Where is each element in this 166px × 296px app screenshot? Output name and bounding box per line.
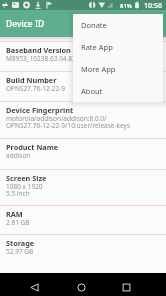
staticText: RAM (6, 209, 23, 219)
staticText: 5.5 inch (6, 189, 166, 198)
button[interactable]: Screen Size (0, 169, 166, 205)
button[interactable]: Product Name (0, 138, 166, 169)
staticText: OPNS27.76-12-22-9/10:user/release-keys (6, 121, 166, 130)
staticText: motorola/addison/addison:8.0.0/ (6, 114, 166, 123)
staticText: Donate (81, 20, 107, 30)
staticText: OPNS27.76-12-22-9 (6, 84, 166, 93)
button[interactable]: About (73, 80, 163, 102)
staticText: Rate App (81, 42, 113, 52)
button[interactable]: Recents (116, 277, 136, 296)
staticText: Build Number (6, 75, 57, 85)
button[interactable]: RAM (0, 205, 166, 234)
staticText: Screen Size (6, 173, 47, 183)
staticText: 52.97 GB (6, 247, 166, 256)
button[interactable]: Back (24, 277, 44, 296)
staticText: Product Name (6, 142, 59, 152)
staticText: addison (6, 151, 166, 160)
staticText: Device ID (6, 18, 45, 30)
button[interactable]: Baseband Version (0, 41, 166, 71)
staticText: Storage (6, 238, 35, 248)
staticText: 2.81 GB (6, 218, 166, 227)
button[interactable]: More App (73, 58, 163, 80)
button[interactable]: Donate (73, 14, 163, 36)
staticText: 10:56 (144, 1, 162, 11)
button[interactable]: Device Fingerprint (0, 101, 166, 138)
staticText: Baseband Version (6, 45, 71, 55)
button[interactable]: Build Number (0, 71, 166, 101)
staticText: Device Fingerprint (6, 105, 74, 115)
staticText: 81% (120, 2, 132, 10)
staticText: About (81, 86, 103, 96)
staticText: More App (81, 64, 116, 74)
button[interactable]: Home (71, 277, 91, 296)
button[interactable]: Rate App (73, 36, 163, 58)
staticText: M8953_10238.63.04.83 (6, 54, 166, 63)
staticText: 1080 x 1920 (6, 182, 166, 191)
button[interactable]: Storage (0, 234, 166, 273)
